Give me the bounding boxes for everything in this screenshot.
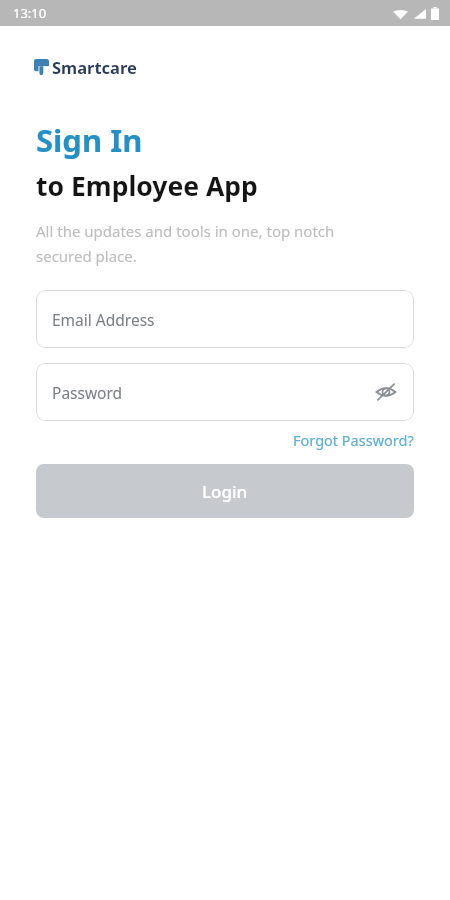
- staticText: Forgot Password?: [293, 430, 414, 450]
- staticText: to Employee App: [36, 168, 258, 204]
- staticText: Smartcare: [52, 56, 137, 78]
- staticText: Email Address: [52, 309, 155, 330]
- staticText: Sign In: [36, 119, 143, 161]
- staticText: Password: [52, 382, 123, 403]
- staticText: 13:10: [13, 4, 47, 22]
- button[interactable]: Password: [36, 363, 414, 421]
- button[interactable]: Email Address: [36, 290, 414, 348]
- button[interactable]: Login: [36, 464, 414, 518]
- button[interactable]: Smartcare: [34, 56, 137, 78]
- staticText: Login: [202, 480, 248, 503]
- button[interactable]: Show password: [372, 378, 400, 406]
- button[interactable]: Forgot Password?: [36, 430, 414, 450]
- staticText: All the updates and tools in one, top no…: [36, 221, 335, 266]
